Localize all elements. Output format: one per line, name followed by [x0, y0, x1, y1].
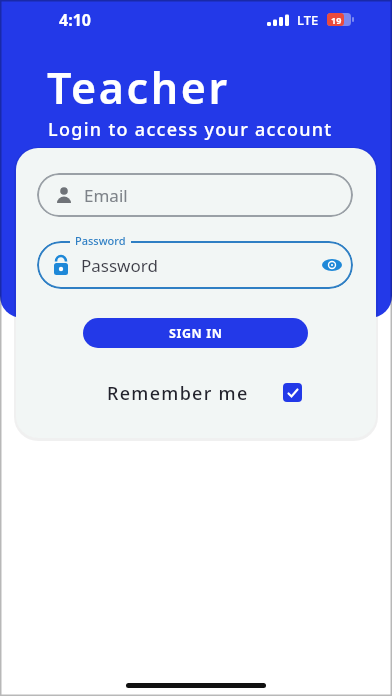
button[interactable]	[283, 383, 302, 402]
staticText: 19	[331, 14, 342, 26]
staticText: 4:10	[59, 9, 91, 31]
button[interactable]: Password	[37, 241, 353, 289]
staticText: SIGN IN	[169, 325, 223, 342]
staticText: Password	[75, 233, 126, 248]
staticText: Password	[81, 254, 158, 277]
staticText: Login to access your account	[48, 117, 333, 142]
staticText: Email	[84, 184, 128, 207]
button[interactable]: SIGN IN	[83, 318, 308, 348]
button[interactable]: Email	[37, 173, 353, 217]
staticText: Teacher	[47, 58, 230, 117]
staticText: LTE	[297, 11, 319, 29]
button[interactable]: Remember me	[107, 381, 249, 406]
